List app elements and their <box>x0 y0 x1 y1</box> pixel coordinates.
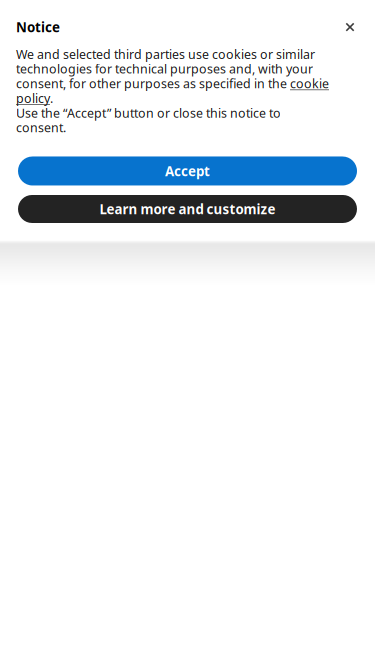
staticText: Learn more and customize <box>99 200 275 218</box>
staticText: We and selected third parties use cookie… <box>16 46 329 136</box>
staticText: Accept <box>165 162 210 180</box>
button[interactable]: Accept <box>18 156 357 185</box>
button[interactable]: Close <box>338 18 362 36</box>
button[interactable]: Learn more and customize <box>18 195 357 223</box>
staticText: Notice <box>16 18 60 36</box>
